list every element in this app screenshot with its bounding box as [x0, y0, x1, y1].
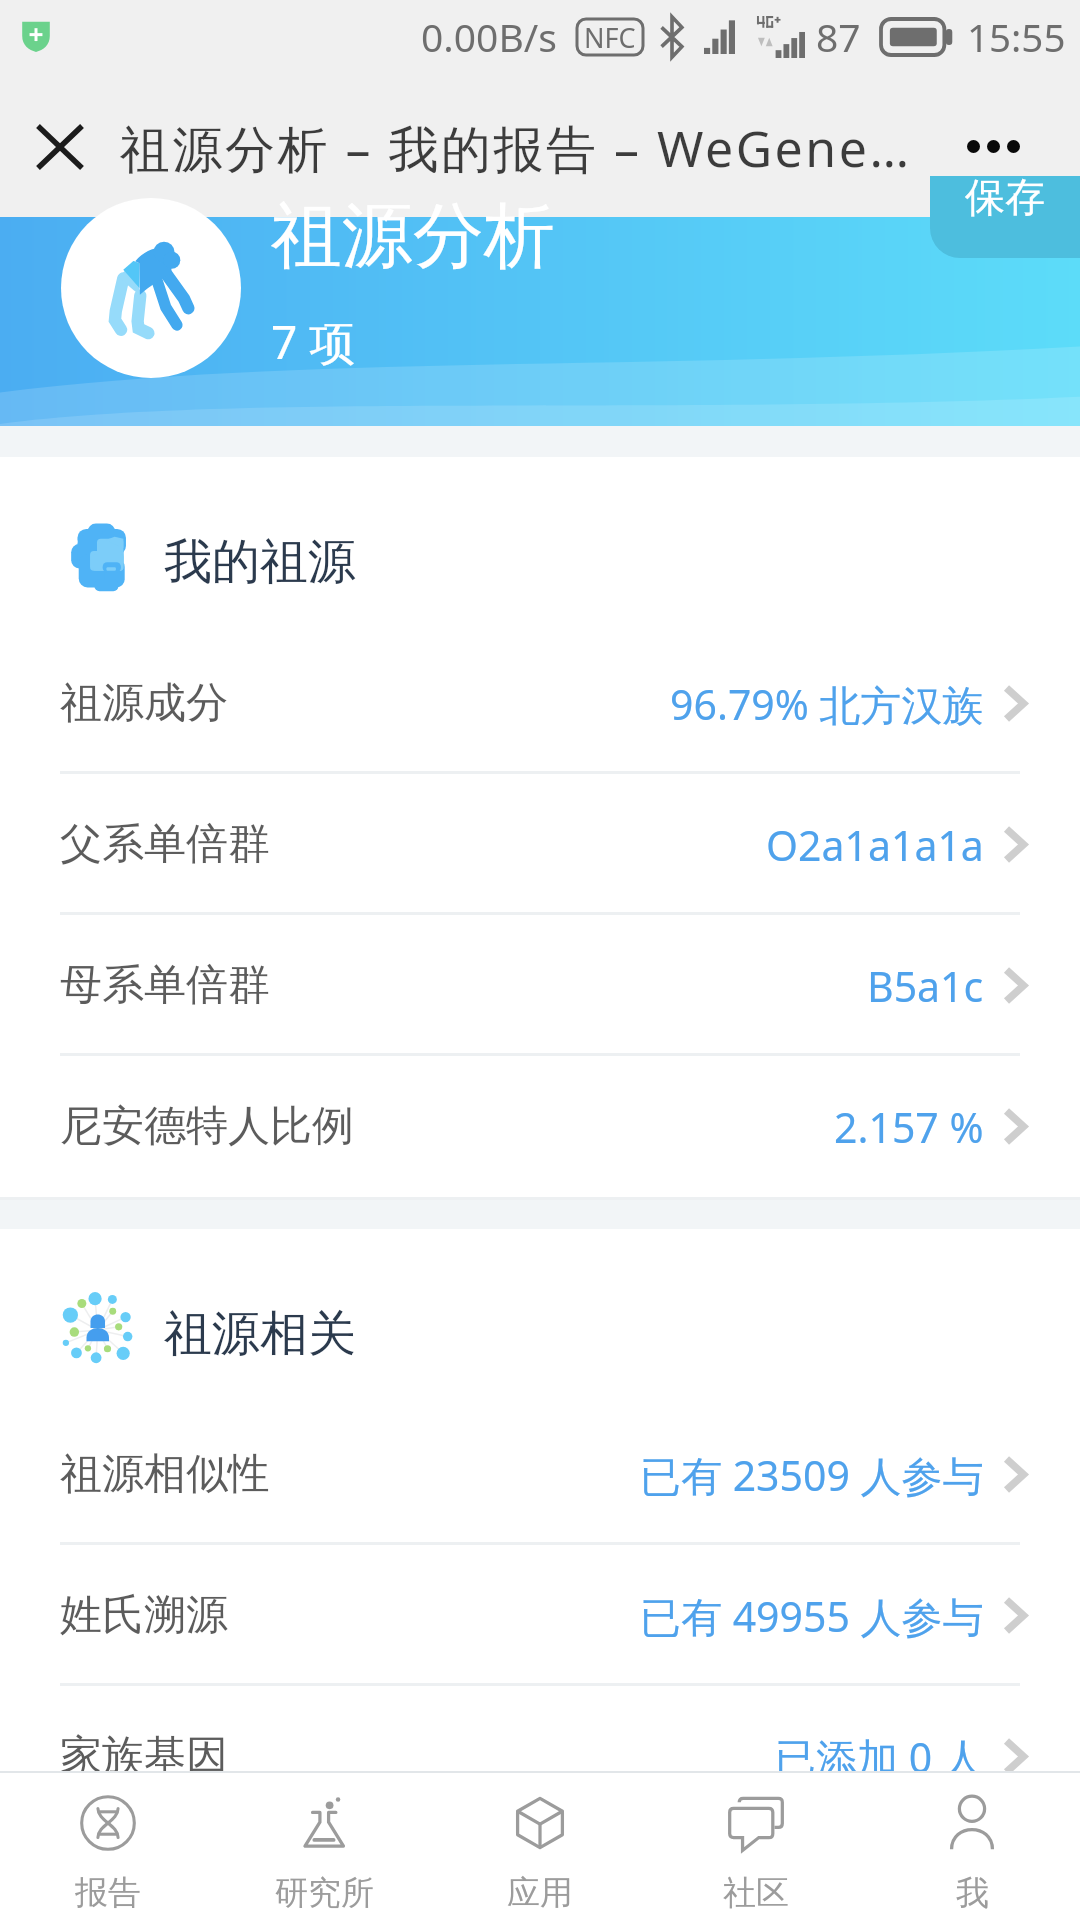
- staticText: B5a1c: [867, 958, 984, 1014]
- button[interactable]: 我: [864, 1773, 1080, 1920]
- button[interactable]: 父系单倍群: [0, 774, 1080, 915]
- staticText: 报告: [75, 1872, 141, 1914]
- staticText: 87: [816, 10, 861, 63]
- staticText: NFC: [584, 19, 636, 55]
- staticText: 家族基因: [60, 1730, 228, 1783]
- staticText: 15:55: [967, 11, 1066, 63]
- button[interactable]: 祖源相似性: [0, 1404, 1080, 1545]
- staticText: 已有 49955 人参与: [640, 1588, 984, 1644]
- staticText: O2a1a1a1a: [766, 817, 984, 873]
- button[interactable]: Close: [0, 76, 119, 217]
- staticText: 祖源成分: [60, 677, 228, 730]
- button[interactable]: 母系单倍群: [0, 915, 1080, 1056]
- button[interactable]: 研究所: [216, 1773, 432, 1920]
- button[interactable]: Save: [930, 176, 1080, 258]
- staticText: 已添加 0 人: [775, 1729, 984, 1785]
- staticText: 96.79% 北方汉族: [670, 676, 984, 732]
- staticText: 祖源分析 – 我的报告 – WeGene…: [120, 114, 912, 182]
- button[interactable]: 姓氏溯源: [0, 1545, 1080, 1686]
- staticText: 7 项: [271, 310, 356, 373]
- staticText: 社区: [723, 1872, 789, 1914]
- staticText: 祖源相似性: [60, 1448, 270, 1501]
- staticText: 我: [956, 1872, 989, 1914]
- staticText: 祖源相关: [164, 1304, 356, 1364]
- button[interactable]: 家族基因: [0, 1686, 1080, 1827]
- button[interactable]: More options: [906, 76, 1080, 217]
- staticText: 保存: [965, 176, 1045, 222]
- button[interactable]: 尼安德特人比例: [0, 1056, 1080, 1197]
- staticText: 0.00B/s: [421, 10, 557, 63]
- button[interactable]: 应用: [432, 1773, 648, 1920]
- staticText: 尼安德特人比例: [60, 1100, 354, 1153]
- staticText: 母系单倍群: [60, 959, 270, 1012]
- staticText: 祖源分析: [271, 192, 555, 281]
- staticText: 应用: [507, 1872, 573, 1914]
- staticText: 2.157 %: [834, 1099, 984, 1155]
- staticText: 已有 23509 人参与: [640, 1447, 984, 1503]
- button[interactable]: 祖源成分: [0, 633, 1080, 774]
- staticText: 父系单倍群: [60, 818, 270, 871]
- staticText: 我的祖源: [164, 532, 356, 592]
- button[interactable]: 报告: [0, 1773, 216, 1920]
- staticText: 研究所: [275, 1872, 374, 1914]
- staticText: 姓氏溯源: [60, 1589, 228, 1642]
- button[interactable]: 社区: [648, 1773, 864, 1920]
